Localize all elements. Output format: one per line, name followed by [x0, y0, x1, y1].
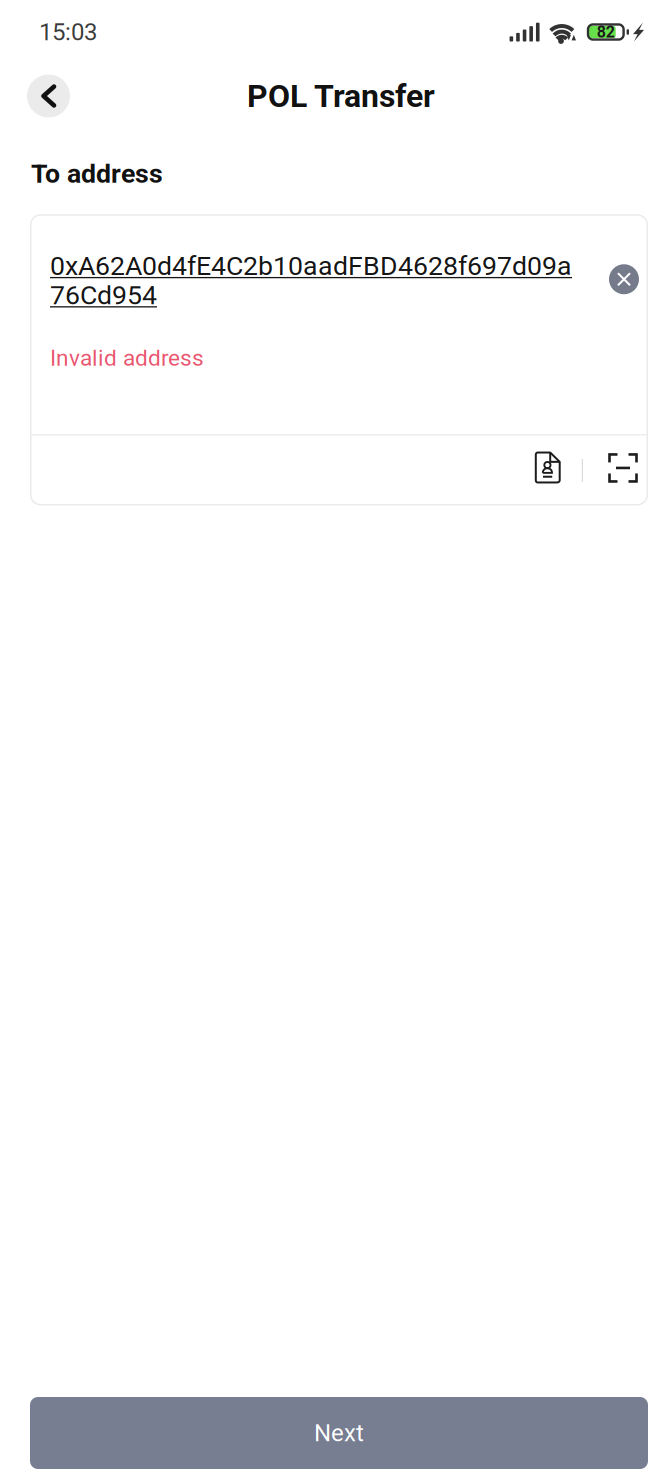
- staticText: Next: [314, 1419, 364, 1447]
- staticText: To address: [31, 158, 163, 189]
- staticText: 76Cd954: [50, 279, 157, 311]
- staticText: 0xA62A0d4fE4C2b10aadFBD4628f697d09a: [50, 250, 572, 282]
- button[interactable]: Clear address: [609, 264, 639, 294]
- button[interactable]: Next: [30, 1397, 648, 1469]
- button[interactable]: Back: [27, 74, 70, 117]
- staticText: POL Transfer: [247, 77, 435, 115]
- staticText: 82: [597, 23, 615, 41]
- staticText: 15:03: [39, 18, 97, 46]
- button[interactable]: Scan QR code: [593, 435, 653, 505]
- staticText: Invalid address: [50, 345, 204, 371]
- button[interactable]: Choose from contacts: [515, 435, 575, 505]
